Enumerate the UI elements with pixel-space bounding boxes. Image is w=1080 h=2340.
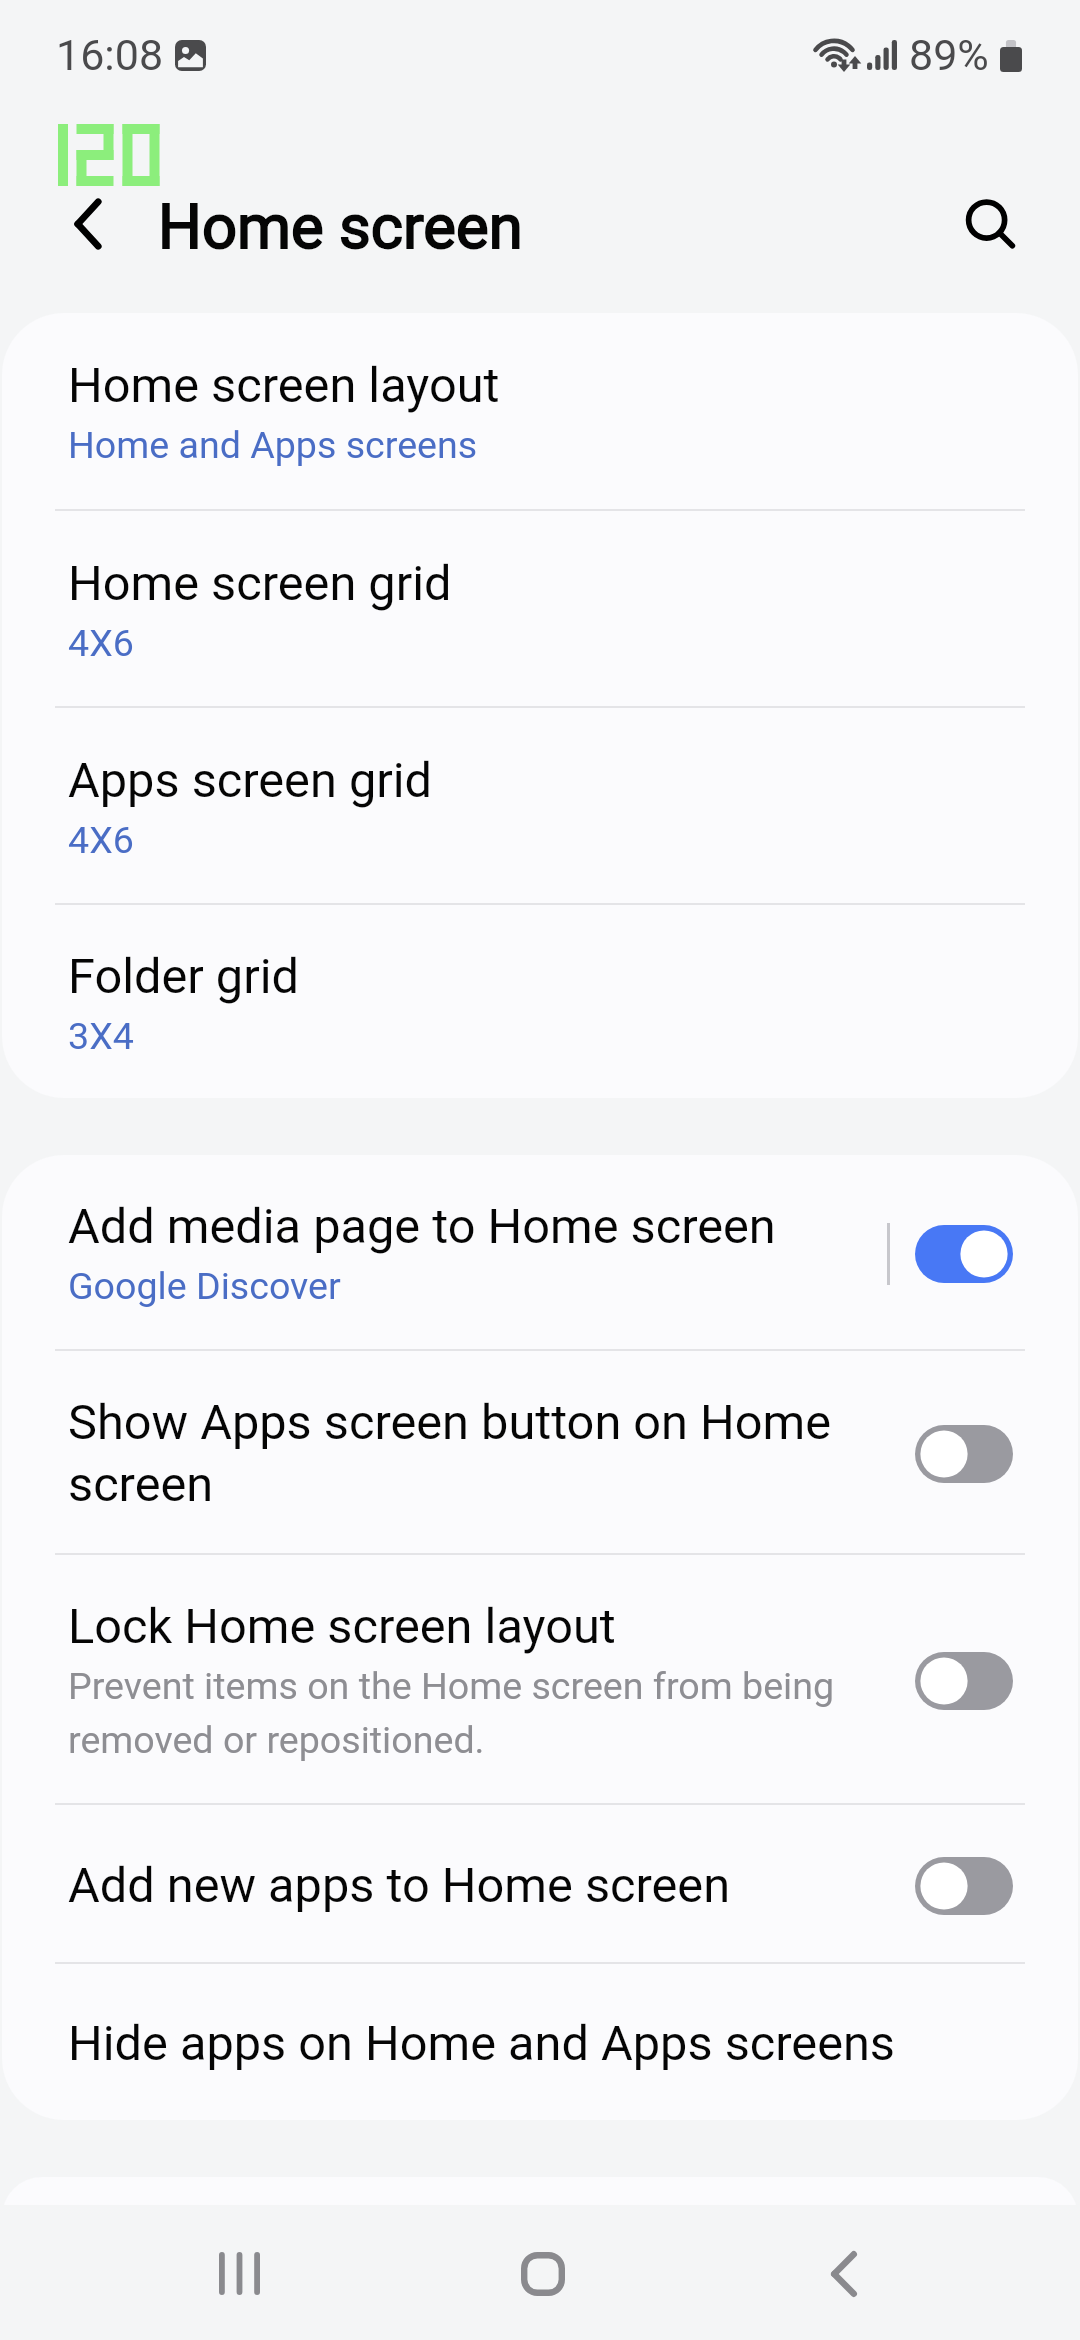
button[interactable]: Search (938, 172, 1048, 282)
button[interactable]: Folder grid (2, 905, 1078, 1098)
staticText: Home and Apps screens (68, 415, 478, 469)
button[interactable]: Add new apps to Home screen (2, 1805, 1078, 1962)
staticText: 16:08 (56, 30, 164, 80)
staticText: Google Discover (68, 1256, 341, 1310)
staticText: Folder grid (68, 944, 300, 1006)
button[interactable]: Home screen grid (2, 511, 1078, 706)
staticText: Home screen grid (68, 551, 452, 613)
staticText: Hide apps on Home and Apps screens (68, 2011, 895, 2073)
staticText: Home screen layout (68, 353, 500, 415)
button[interactable]: Recent apps (164, 2205, 314, 2340)
button[interactable]: Back (769, 2205, 919, 2340)
button[interactable]: Switch off (915, 1652, 1013, 1710)
button[interactable]: Switch off (915, 1857, 1013, 1915)
button[interactable]: Navigate up (28, 164, 148, 284)
staticText: 4X6 (68, 613, 134, 667)
button[interactable]: Lock Home screen layout (2, 1555, 1078, 1803)
staticText: 89% (909, 30, 989, 80)
button[interactable]: Switch off (915, 1425, 1013, 1483)
button[interactable]: Home screen layout (2, 313, 1078, 509)
button[interactable]: Hide apps on Home and Apps screens (2, 1964, 1078, 2120)
staticText: Apps screen grid (68, 748, 433, 810)
button[interactable]: Apps screen grid (2, 708, 1078, 903)
staticText: Home screen (158, 191, 523, 263)
staticText: 4X6 (68, 810, 134, 864)
button[interactable]: Show Apps screen button on Home screen (2, 1351, 1078, 1553)
staticText: 3X4 (68, 1006, 134, 1060)
staticText: Show Apps screen button on Home screen (68, 1390, 832, 1514)
staticText: Prevent items on the Home screen from be… (68, 1656, 835, 1764)
staticText: Add new apps to Home screen (68, 1853, 731, 1915)
button[interactable]: Add media page to Home screen (2, 1155, 1078, 1349)
button[interactable]: Switch on (915, 1225, 1013, 1283)
staticText: Lock Home screen layout (68, 1594, 616, 1656)
button[interactable]: Home (466, 2205, 616, 2340)
staticText: Add media page to Home screen (68, 1194, 776, 1256)
